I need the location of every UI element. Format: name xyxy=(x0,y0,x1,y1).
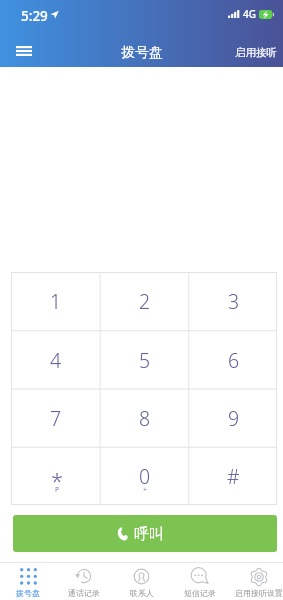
staticText: 5:29 xyxy=(21,7,48,25)
staticText: 2 xyxy=(139,288,151,315)
button[interactable]: 5 xyxy=(99,331,188,389)
button[interactable]: 拨号盘 xyxy=(0,563,56,600)
staticText: + xyxy=(143,485,148,495)
staticText: 拨号盘 xyxy=(16,588,40,598)
button[interactable]: 启用接听 xyxy=(0,28,283,67)
button[interactable]: 9 xyxy=(188,389,277,447)
button[interactable]: 1 xyxy=(11,272,99,331)
staticText: 拨号盘 xyxy=(121,44,163,62)
button[interactable]: 启用接听设置 xyxy=(226,563,283,600)
button[interactable]: 短信记录 xyxy=(169,563,226,600)
button[interactable]: 联系人 xyxy=(112,563,169,600)
button[interactable]: 7 xyxy=(11,389,99,447)
staticText: 6 xyxy=(228,347,240,374)
staticText: P xyxy=(55,485,60,495)
staticText: 4G xyxy=(243,7,256,21)
staticText: 8 xyxy=(139,405,151,432)
staticText: 0 xyxy=(139,463,151,490)
staticText: # xyxy=(227,463,240,490)
staticText: 联系人 xyxy=(130,588,154,598)
button[interactable]: 6 xyxy=(188,331,277,389)
staticText: 启用接听设置 xyxy=(235,588,283,598)
staticText: 1 xyxy=(50,288,62,315)
button[interactable]: 呼叫 xyxy=(13,515,277,552)
staticText: 7 xyxy=(50,405,62,432)
staticText: 9 xyxy=(228,405,240,432)
button[interactable]: 0 xyxy=(99,447,188,505)
staticText: 启用接听 xyxy=(235,46,277,59)
button[interactable]: * xyxy=(11,447,99,505)
staticText: 短信记录 xyxy=(184,588,216,598)
staticText: 呼叫 xyxy=(134,525,164,544)
staticText: 通话记录 xyxy=(68,588,100,598)
button[interactable]: # xyxy=(188,447,277,505)
staticText: 3 xyxy=(228,288,240,315)
button[interactable]: 8 xyxy=(99,389,188,447)
button[interactable]: 2 xyxy=(99,272,188,331)
button[interactable]: 通话记录 xyxy=(56,563,112,600)
staticText: 5 xyxy=(139,347,151,374)
button[interactable]: 4 xyxy=(11,331,99,389)
staticText: * xyxy=(51,465,64,495)
button[interactable]: Menu xyxy=(0,28,48,67)
staticText: 4 xyxy=(50,347,62,374)
button[interactable]: 3 xyxy=(188,272,277,331)
